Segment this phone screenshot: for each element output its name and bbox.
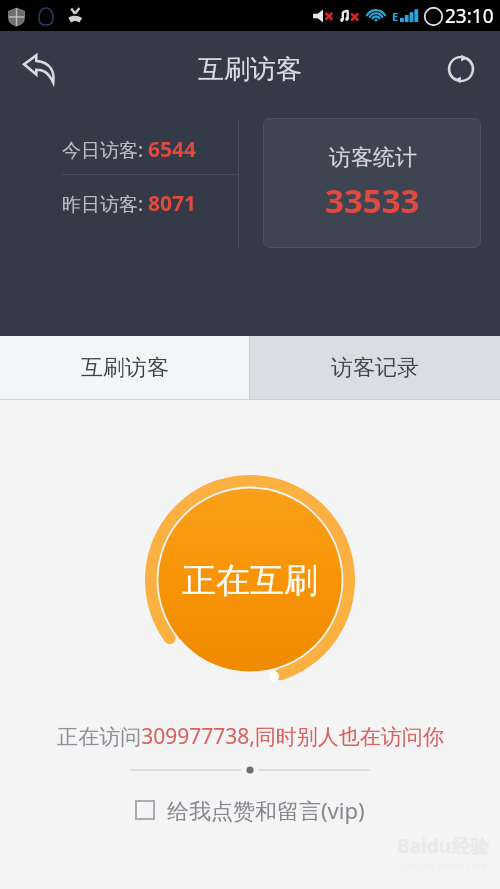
staticText: 23:10 [445,3,494,29]
staticText: 给我点赞和留言(vip) [167,795,365,825]
staticText: 33533 [325,178,420,223]
staticText: 今日访客: 6544 [62,135,197,164]
staticText: 访客统计 [329,144,417,172]
staticText: 访客记录 [331,354,419,382]
button[interactable]: Refresh [436,44,486,94]
staticText: Baidu经验 [397,833,490,859]
button[interactable]: Back [14,44,64,94]
button[interactable]: 互刷访客 [0,336,249,399]
button[interactable]: 正在互刷 [144,474,356,686]
staticText: 正在互刷 [182,559,318,602]
button[interactable]: 给我点赞和留言(vip) [127,791,373,829]
staticText: 互刷访客 [81,354,169,382]
staticText: 正在访问309977738,同时别人也在访问你 [57,722,444,751]
staticText: E [392,9,399,24]
button[interactable]: 访客统计 [263,118,481,248]
button[interactable]: 访客记录 [250,336,500,399]
staticText: 昨日访客: 8071 [62,189,197,218]
staticText: 互刷访客 [198,53,302,86]
